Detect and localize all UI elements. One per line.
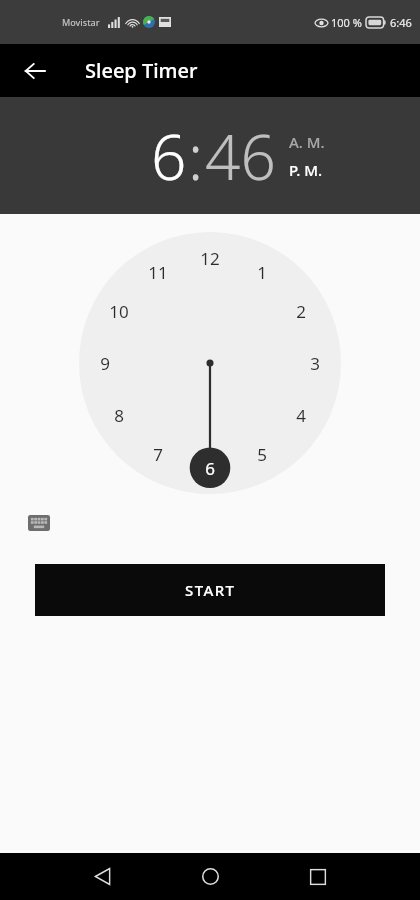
staticText: 12 (200, 247, 220, 270)
button[interactable]: 6 (190, 448, 230, 488)
staticText: 2 (296, 300, 306, 323)
staticText: P. M. (289, 160, 323, 180)
button[interactable]: Home (178, 853, 242, 900)
button[interactable]: Back (14, 50, 56, 92)
staticText: START (185, 580, 236, 600)
button[interactable]: 4 (281, 395, 321, 435)
staticText: : (188, 114, 204, 198)
button[interactable]: 5 (242, 434, 282, 474)
button[interactable]: Back (70, 853, 134, 900)
button[interactable]: 7 (138, 434, 178, 474)
staticText: A. M. (289, 132, 325, 152)
button[interactable]: Switch to keyboard input (22, 506, 56, 540)
staticText: 5 (257, 443, 267, 466)
staticText: 9 (100, 352, 110, 375)
button[interactable]: 46 (204, 114, 277, 198)
staticText: 1 (257, 261, 267, 284)
staticText: 6 (205, 457, 215, 480)
staticText: 6 (151, 114, 187, 198)
button[interactable]: 12 (190, 238, 230, 278)
button[interactable]: 1 (242, 252, 282, 292)
button[interactable]: 8 (99, 395, 139, 435)
staticText: 4 (296, 404, 306, 427)
button[interactable]: START (35, 564, 385, 616)
staticText: 7 (153, 443, 163, 466)
staticText: Movistar (62, 16, 100, 28)
button[interactable]: P. M. (289, 160, 323, 180)
button[interactable]: Recent apps (286, 853, 350, 900)
button[interactable]: A. M. (289, 132, 325, 152)
staticText: 8 (114, 404, 124, 427)
staticText: 46 (205, 114, 276, 198)
staticText: 6:46 (390, 15, 412, 30)
staticText: 11 (148, 261, 168, 284)
staticText: Sleep Timer (85, 57, 198, 84)
button[interactable]: 6 (150, 114, 188, 198)
button[interactable]: 9 (85, 343, 125, 383)
button[interactable]: 3 (295, 343, 335, 383)
button[interactable]: 10 (99, 291, 139, 331)
staticText: 10 (109, 300, 129, 323)
button[interactable]: 11 (138, 252, 178, 292)
button[interactable]: 2 (281, 291, 321, 331)
staticText: 100 % (331, 15, 362, 30)
staticText: 3 (310, 352, 320, 375)
